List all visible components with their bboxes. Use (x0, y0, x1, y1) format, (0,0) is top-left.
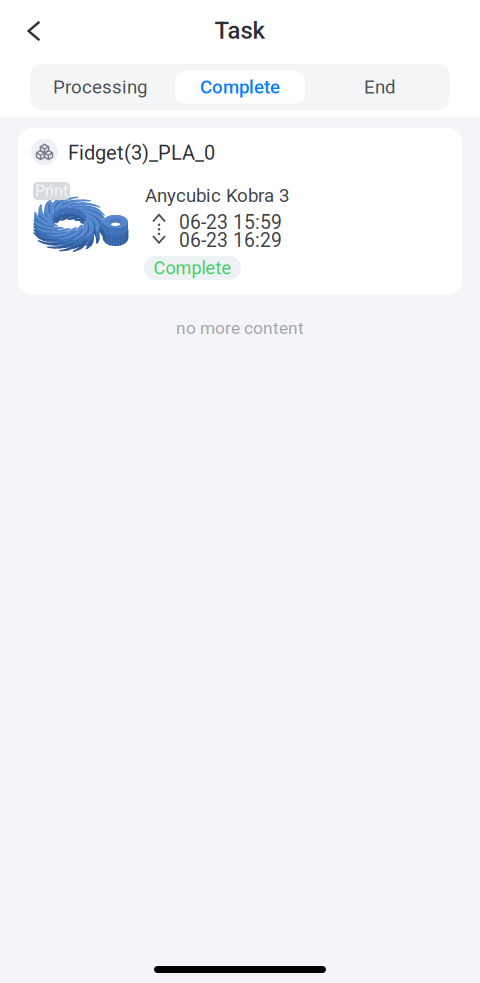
staticText: Task (214, 16, 265, 44)
button[interactable]: Back (7, 5, 61, 57)
staticText: Processing (53, 76, 147, 98)
staticText: Print (35, 182, 68, 200)
button[interactable]: Processing (30, 64, 170, 110)
staticText: 06-23 15:59 (179, 211, 282, 234)
button[interactable]: End (310, 64, 450, 110)
staticText: Complete (200, 76, 280, 98)
staticText: Anycubic Kobra 3 (145, 185, 289, 206)
button[interactable]: Complete (175, 70, 305, 103)
staticText: 06-23 16:29 (179, 229, 282, 252)
staticText: no more content (176, 318, 304, 338)
button[interactable]: Fidget(3)_PLA_0 (18, 128, 462, 295)
staticText: End (364, 76, 396, 98)
staticText: Complete (153, 257, 231, 279)
staticText: Fidget(3)_PLA_0 (68, 141, 215, 165)
